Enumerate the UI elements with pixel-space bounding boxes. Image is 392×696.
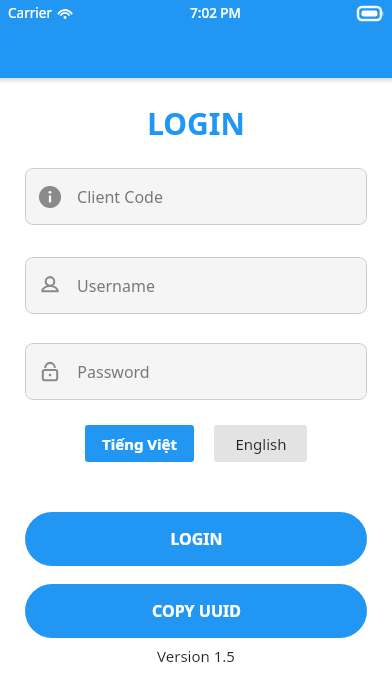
staticText: 7:02 PM <box>190 4 241 22</box>
staticText: LOGIN <box>147 103 245 144</box>
staticText: Client Code <box>77 186 163 208</box>
staticText: English <box>235 434 287 454</box>
staticText: Version 1.5 <box>157 646 235 666</box>
staticText: Password <box>77 361 150 383</box>
staticText: LOGIN <box>170 528 223 550</box>
staticText: Carrier <box>8 4 52 22</box>
button[interactable]: Client Code <box>25 168 367 225</box>
staticText: COPY UUID <box>152 600 241 622</box>
button[interactable]: Password <box>25 343 367 400</box>
button[interactable]: COPY UUID <box>25 584 367 638</box>
button[interactable]: Username <box>25 257 367 314</box>
button[interactable]: LOGIN <box>25 512 367 566</box>
button[interactable]: Tiếng Việt <box>85 425 194 462</box>
staticText: Tiếng Việt <box>102 434 177 454</box>
button[interactable]: English <box>214 425 307 462</box>
staticText: Username <box>77 275 155 297</box>
